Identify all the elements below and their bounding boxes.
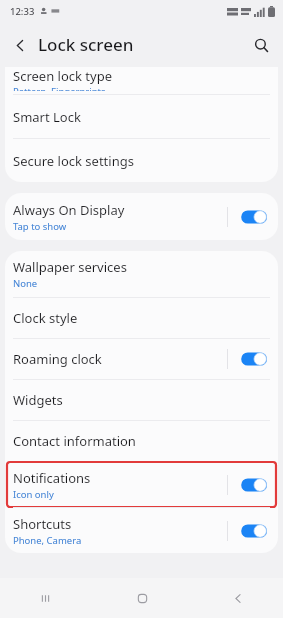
staticText: Tap to show bbox=[13, 220, 67, 233]
button[interactable]: Contact information bbox=[5, 421, 278, 461]
staticText: Lock screen bbox=[38, 33, 134, 56]
button[interactable]: Roaming clock bbox=[5, 339, 278, 379]
button[interactable]: Back bbox=[4, 29, 36, 61]
staticText: Contact information bbox=[13, 432, 136, 450]
staticText: Shortcuts bbox=[13, 515, 72, 533]
staticText: Phone, Camera bbox=[13, 534, 82, 547]
button[interactable]: Recents bbox=[26, 579, 64, 617]
staticText: Notifications bbox=[13, 469, 91, 487]
button[interactable]: Notifications bbox=[5, 462, 278, 507]
staticText: Smart Lock bbox=[13, 108, 81, 126]
staticText: Always On Display bbox=[13, 201, 125, 219]
button[interactable]: Search bbox=[245, 29, 277, 61]
staticText: 12:33 bbox=[10, 5, 35, 18]
staticText: Screen lock type bbox=[13, 67, 112, 85]
staticText: None bbox=[13, 277, 38, 290]
staticText: Secure lock settings bbox=[13, 152, 134, 170]
button[interactable]: Always On Display bbox=[5, 193, 278, 240]
button[interactable]: Secure lock settings bbox=[5, 139, 278, 182]
staticText: Pattern, Fingerprints bbox=[13, 85, 106, 91]
button[interactable]: Back bbox=[219, 579, 257, 617]
button[interactable]: Shortcuts bbox=[5, 508, 278, 553]
staticText: Wallpaper services bbox=[13, 258, 127, 276]
button[interactable]: Smart Lock bbox=[5, 95, 278, 138]
button[interactable]: Widgets bbox=[5, 380, 278, 420]
staticText: Widgets bbox=[13, 391, 63, 409]
button[interactable]: Clock style bbox=[5, 298, 278, 338]
staticText: Clock style bbox=[13, 309, 78, 327]
staticText: Icon only bbox=[13, 488, 54, 501]
button[interactable]: Screen lock type bbox=[5, 67, 278, 94]
button[interactable]: Wallpaper services bbox=[5, 251, 278, 297]
button[interactable]: Home bbox=[123, 579, 161, 617]
staticText: Roaming clock bbox=[13, 350, 102, 368]
